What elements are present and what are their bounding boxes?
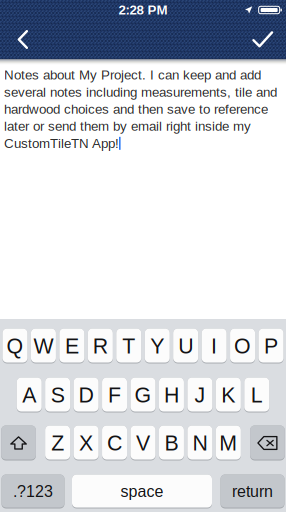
button[interactable]: S — [45, 378, 70, 412]
button[interactable]: Delete — [250, 426, 285, 460]
button[interactable]: return — [220, 475, 284, 508]
button[interactable]: I — [202, 329, 227, 363]
button[interactable]: Y — [145, 329, 170, 363]
staticText: later or send them by email right inside… — [4, 119, 251, 134]
button[interactable]: space — [72, 475, 212, 508]
staticText: M — [219, 431, 237, 455]
button[interactable]: V — [130, 426, 155, 460]
button[interactable]: W — [31, 329, 56, 363]
button[interactable]: U — [173, 329, 198, 363]
button[interactable]: Save note — [240, 20, 286, 59]
button[interactable]: Z — [45, 426, 70, 460]
button[interactable]: D — [74, 378, 99, 412]
staticText: N — [192, 431, 207, 455]
staticText: E — [65, 334, 79, 358]
button[interactable]: H — [159, 378, 184, 412]
staticText: hardwood choices and then save to refere… — [4, 102, 268, 117]
button[interactable]: J — [187, 378, 212, 412]
button[interactable]: N — [187, 426, 212, 460]
button[interactable]: .?123 — [1, 475, 64, 508]
staticText: Notes about My Project. I can keep and a… — [4, 67, 261, 82]
staticText: P — [264, 334, 278, 358]
button[interactable]: E — [59, 329, 84, 363]
button[interactable]: K — [216, 378, 241, 412]
button[interactable]: F — [102, 378, 127, 412]
staticText: A — [22, 383, 36, 407]
staticText: F — [108, 383, 121, 407]
button[interactable]: C — [102, 426, 127, 460]
staticText: O — [234, 334, 251, 358]
staticText: CustomTileTN App! — [4, 136, 119, 151]
staticText: T — [122, 334, 135, 358]
staticText: 2:28 PM — [118, 3, 167, 17]
button[interactable]: Back — [0, 20, 46, 59]
staticText: I — [211, 334, 217, 358]
staticText: R — [93, 334, 108, 358]
staticText: J — [194, 383, 205, 407]
staticText: L — [251, 383, 263, 407]
staticText: S — [51, 383, 65, 407]
staticText: return — [232, 483, 273, 500]
button[interactable]: R — [88, 329, 113, 363]
staticText: Y — [150, 334, 164, 358]
staticText: Q — [6, 334, 23, 358]
staticText: U — [178, 334, 193, 358]
button[interactable]: B — [159, 426, 184, 460]
staticText: X — [79, 431, 93, 455]
staticText: H — [164, 383, 179, 407]
button[interactable]: Shift — [1, 426, 36, 460]
staticText: B — [164, 431, 178, 455]
staticText: several notes including measurements, ti… — [4, 85, 277, 99]
staticText: Z — [51, 431, 64, 455]
staticText: G — [134, 383, 151, 407]
staticText: V — [136, 431, 150, 455]
button[interactable]: A — [17, 378, 42, 412]
staticText: .?123 — [13, 483, 53, 500]
button[interactable]: P — [258, 329, 283, 363]
button[interactable]: G — [130, 378, 155, 412]
button[interactable]: M — [216, 426, 241, 460]
button[interactable]: T — [116, 329, 141, 363]
staticText: C — [107, 431, 122, 455]
button[interactable]: X — [74, 426, 99, 460]
staticText: W — [33, 334, 53, 358]
button[interactable]: O — [230, 329, 255, 363]
staticText: K — [221, 383, 235, 407]
button[interactable]: L — [244, 378, 269, 412]
button[interactable]: Q — [2, 329, 27, 363]
staticText: space — [120, 483, 163, 500]
staticText: D — [79, 383, 94, 407]
